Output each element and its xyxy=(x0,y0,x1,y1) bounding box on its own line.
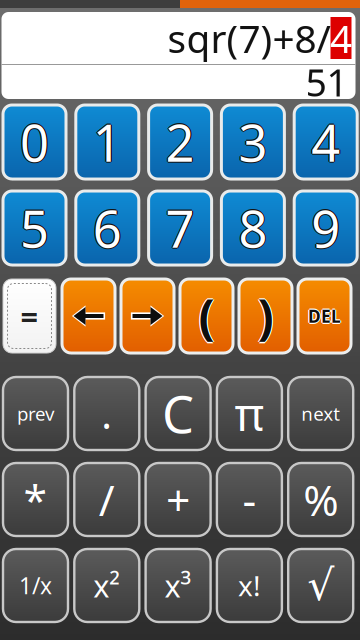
staticText: 2 xyxy=(167,108,196,176)
button[interactable]: x! xyxy=(217,549,282,622)
staticText: / xyxy=(99,471,115,528)
staticText: 4 xyxy=(310,108,339,176)
staticText: 51 xyxy=(305,57,347,107)
button[interactable]: 4 xyxy=(294,105,357,179)
staticText: % xyxy=(303,471,338,528)
staticText: DEL xyxy=(308,303,341,326)
button[interactable]: x² xyxy=(74,549,139,622)
button[interactable]: 1/x xyxy=(3,549,68,622)
staticText: 1/x xyxy=(19,570,52,600)
staticText: 8 xyxy=(240,194,269,262)
staticText: 5 xyxy=(20,194,49,262)
staticText: 1 xyxy=(92,108,121,176)
button[interactable]: % xyxy=(288,463,353,536)
staticText: 2 xyxy=(166,110,195,177)
staticText: 2 xyxy=(166,108,195,176)
staticText: 0 xyxy=(20,107,49,174)
staticText: 1 xyxy=(93,108,122,176)
staticText: 8 xyxy=(238,193,267,260)
button[interactable]: = xyxy=(3,279,56,353)
staticText: 2 xyxy=(166,107,195,174)
staticText: = xyxy=(20,296,38,336)
staticText: ( xyxy=(200,284,216,348)
button[interactable]: - xyxy=(217,463,282,536)
staticText: 3 xyxy=(237,108,266,176)
staticText: 3 xyxy=(238,110,267,177)
staticText: ) xyxy=(257,284,273,348)
staticText: 3 xyxy=(238,108,267,176)
button[interactable]: π xyxy=(217,377,282,450)
button[interactable]: * xyxy=(3,463,68,536)
staticText: 0 xyxy=(20,108,49,176)
staticText: C xyxy=(162,380,194,447)
staticText: * xyxy=(23,471,47,528)
staticText: x! xyxy=(238,567,261,604)
staticText: √ xyxy=(307,561,334,610)
staticText: 4 xyxy=(330,12,352,64)
staticText: DEL xyxy=(308,306,341,329)
staticText: ( xyxy=(198,284,214,348)
button[interactable]: x³ xyxy=(146,549,211,622)
staticText: 6 xyxy=(92,194,121,262)
staticText: 7 xyxy=(166,196,195,263)
staticText: π xyxy=(234,383,264,444)
button[interactable]: 5 xyxy=(3,191,66,265)
staticText: ) xyxy=(257,283,273,346)
staticText: sqr(7)+8/ xyxy=(167,12,330,64)
staticText: ( xyxy=(197,284,213,348)
staticText: 6 xyxy=(93,196,122,263)
staticText: ( xyxy=(198,283,214,346)
staticText: 0 xyxy=(21,108,50,176)
button[interactable]: ( xyxy=(180,279,233,353)
button[interactable]: Move cursor right xyxy=(121,279,174,353)
button[interactable]: + xyxy=(146,463,211,536)
staticText: x² xyxy=(93,565,120,606)
staticText: DEL xyxy=(308,304,341,327)
staticText: ) xyxy=(257,285,273,349)
button[interactable]: 3 xyxy=(221,105,284,179)
staticText: 4 xyxy=(311,108,340,176)
staticText: 9 xyxy=(310,194,339,262)
button[interactable]: 1 xyxy=(76,105,139,179)
staticText: 3 xyxy=(238,107,267,174)
button[interactable]: / xyxy=(74,463,139,536)
staticText: 5 xyxy=(20,193,49,260)
button[interactable]: C xyxy=(146,377,211,450)
staticText: 1 xyxy=(93,110,122,177)
staticText: 2 xyxy=(164,108,193,176)
button[interactable]: 8 xyxy=(221,191,284,265)
staticText: 1 xyxy=(93,107,122,174)
button[interactable]: 9 xyxy=(294,191,357,265)
staticText: 4 xyxy=(311,110,340,177)
staticText: 8 xyxy=(237,194,266,262)
button[interactable]: Move cursor left xyxy=(62,279,115,353)
staticText: ) xyxy=(259,284,275,348)
button[interactable]: DEL xyxy=(298,279,351,353)
staticText: 7 xyxy=(167,194,196,262)
staticText: 7 xyxy=(166,193,195,260)
button[interactable]: 6 xyxy=(76,191,139,265)
button[interactable]: ) xyxy=(239,279,292,353)
staticText: ) xyxy=(256,284,272,348)
button[interactable]: next xyxy=(288,377,353,450)
button[interactable]: . xyxy=(74,377,139,450)
staticText: 8 xyxy=(238,196,267,263)
staticText: 5 xyxy=(20,196,49,263)
staticText: 5 xyxy=(21,194,50,262)
button[interactable]: 7 xyxy=(149,191,212,265)
staticText: 7 xyxy=(166,194,195,262)
staticText: 5 xyxy=(19,194,48,262)
staticText: 9 xyxy=(311,194,340,262)
staticText: ( xyxy=(198,285,214,349)
staticText: . xyxy=(101,387,112,440)
button[interactable]: √ xyxy=(288,549,353,622)
staticText: x³ xyxy=(165,565,192,606)
button[interactable]: 0 xyxy=(3,105,66,179)
button[interactable]: 2 xyxy=(149,105,212,179)
button[interactable]: prev xyxy=(3,377,68,450)
staticText: 3 xyxy=(240,108,269,176)
staticText: 8 xyxy=(238,194,267,262)
staticText: 7 xyxy=(164,194,193,262)
staticText: + xyxy=(166,471,190,528)
staticText: 1 xyxy=(94,108,123,176)
